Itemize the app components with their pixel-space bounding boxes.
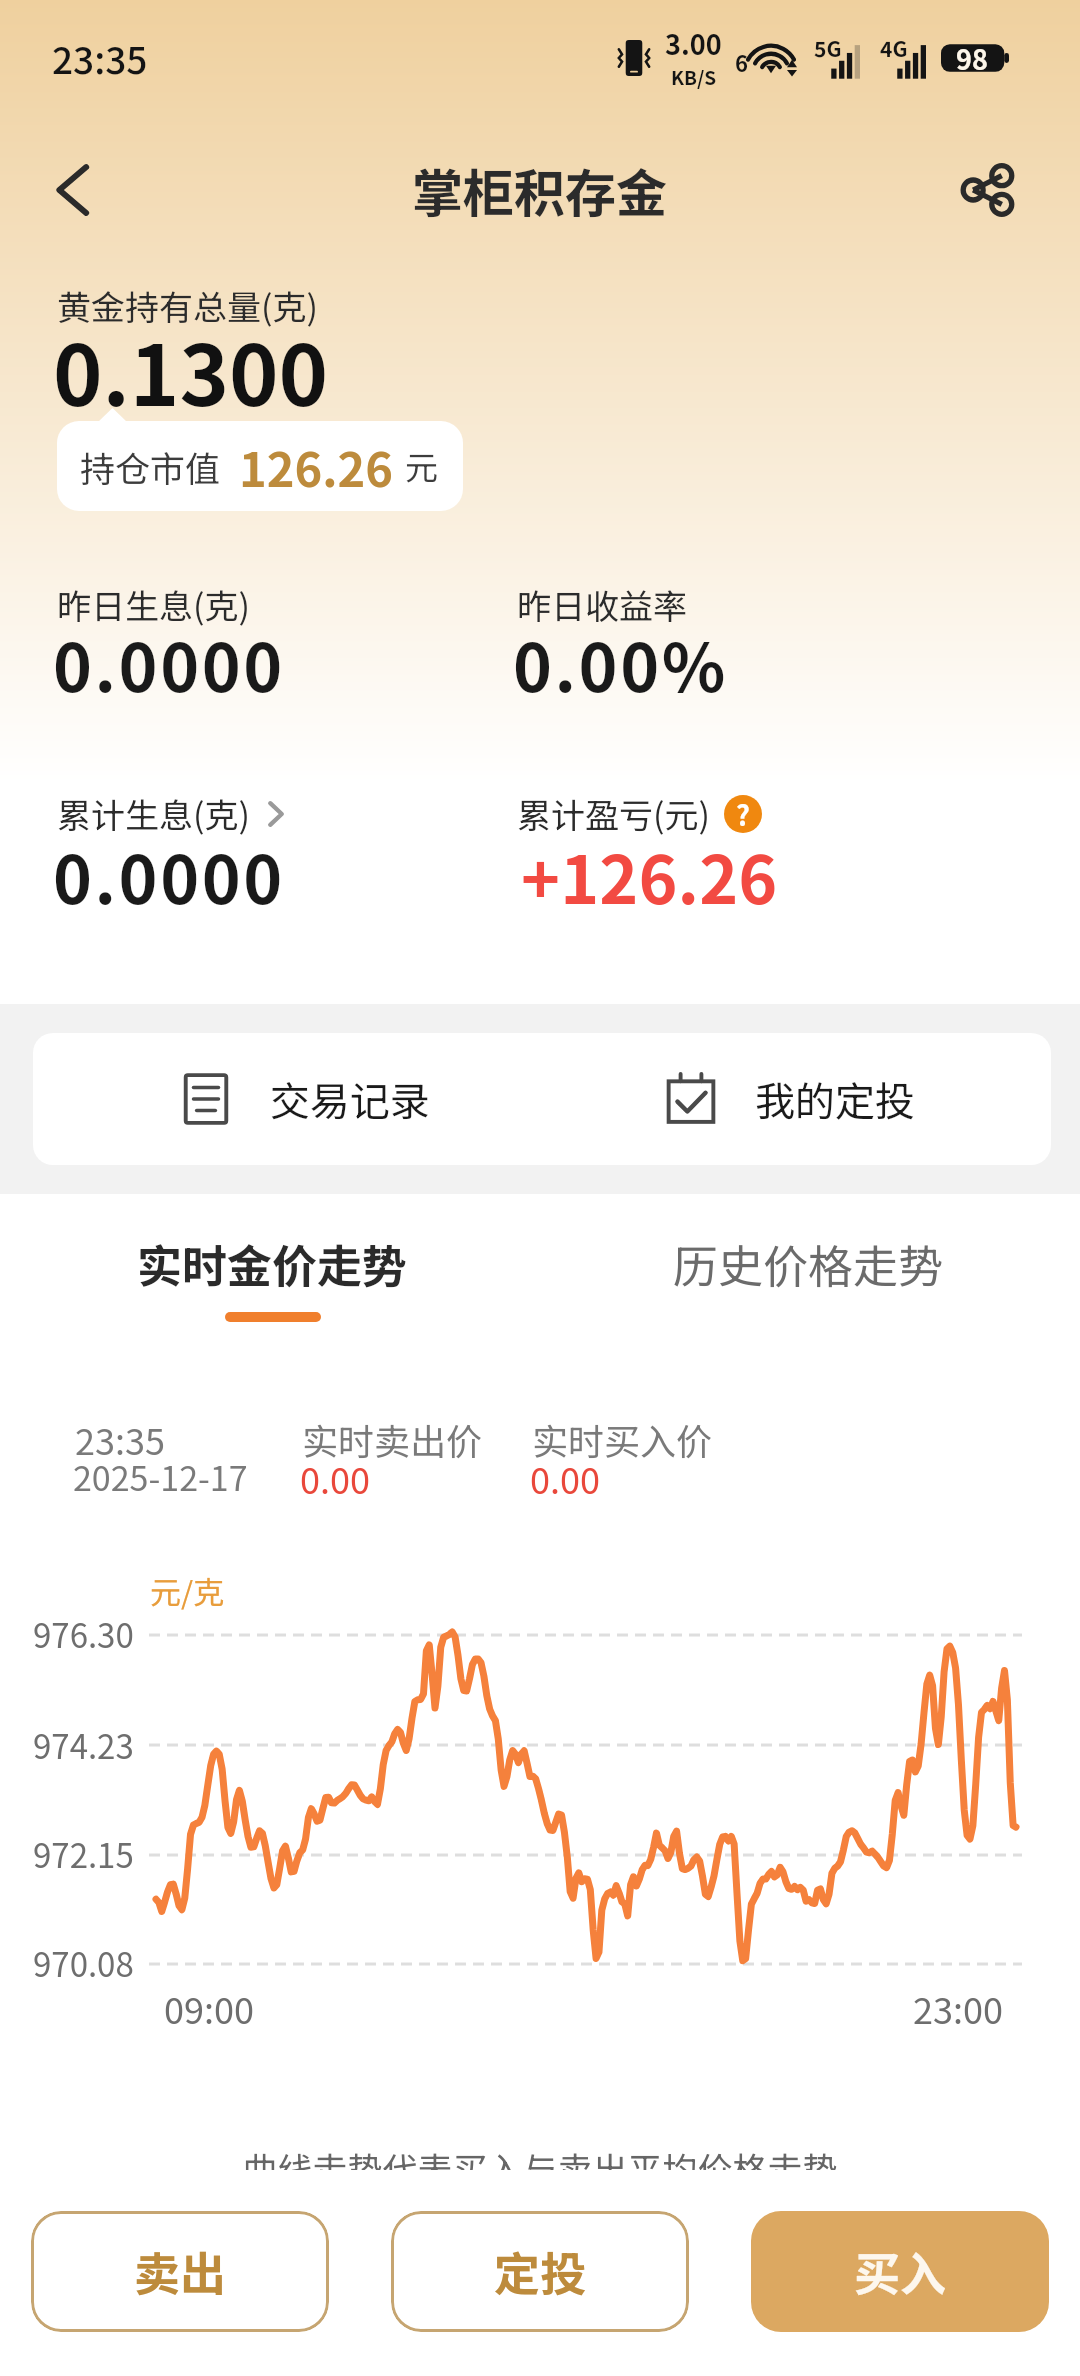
staticText: KB/S xyxy=(671,63,717,91)
staticText: 0.1300 xyxy=(53,309,329,431)
staticText: 曲线走势代表买入与卖出平均价格走势 xyxy=(0,2142,1080,2193)
staticText: 2025-12-17 xyxy=(73,1452,248,1501)
staticText: 23:35 xyxy=(75,1413,165,1465)
staticText: 实时金价走势 xyxy=(137,1231,408,1296)
staticText: 掌柜积存金 xyxy=(412,153,668,227)
button[interactable]: 我的定投 xyxy=(542,1033,1051,1165)
staticText: 976.30 xyxy=(33,1610,134,1658)
button[interactable]: Help xyxy=(724,795,762,833)
staticText: 972.15 xyxy=(33,1830,134,1878)
staticText: 23:00 xyxy=(913,1982,1003,2034)
staticText: 4G xyxy=(880,33,908,63)
staticText: 实时买入价 xyxy=(532,1413,713,1465)
staticText: 974.23 xyxy=(33,1721,134,1769)
staticText: 3.00 xyxy=(665,24,722,63)
button[interactable]: 交易记录 xyxy=(33,1033,542,1165)
staticText: 实时卖出价 xyxy=(302,1413,483,1465)
staticText: 0.0000 xyxy=(53,615,285,711)
button[interactable]: Back xyxy=(39,154,111,226)
staticText: ? xyxy=(736,795,750,833)
staticText: 历史价格走势 xyxy=(673,1231,944,1296)
button[interactable]: 历史价格走势 xyxy=(630,1231,986,1341)
staticText: 126.26 xyxy=(239,432,393,500)
button[interactable]: 买入 xyxy=(751,2211,1049,2332)
staticText: 累计盈亏(元) xyxy=(517,789,710,838)
staticText: 98 xyxy=(956,39,988,78)
staticText: 持仓市值 xyxy=(80,441,221,492)
button[interactable]: 持仓市值 xyxy=(57,421,463,511)
staticText: 昨日收益率 xyxy=(517,580,687,629)
staticText: 元 xyxy=(405,442,438,490)
staticText: 0.00 xyxy=(300,1452,370,1504)
staticText: 昨日生息(克) xyxy=(57,580,250,629)
staticText: 黄金持有总量(克) xyxy=(57,281,318,330)
staticText: 0.00 xyxy=(530,1452,600,1504)
staticText: 交易记录 xyxy=(270,1070,430,1128)
button[interactable]: 定投 xyxy=(391,2211,689,2332)
button[interactable]: 累计生息(克) xyxy=(57,789,294,838)
staticText: 5G xyxy=(814,33,842,63)
staticText: 我的定投 xyxy=(755,1070,915,1128)
staticText: 定投 xyxy=(494,2238,586,2305)
staticText: 元/克 xyxy=(150,1568,225,1613)
staticText: 0.0000 xyxy=(53,827,285,923)
staticText: +126.26 xyxy=(521,827,778,923)
staticText: 6 xyxy=(735,46,748,78)
staticText: 970.08 xyxy=(33,1939,134,1987)
staticText: 0.00% xyxy=(513,615,728,711)
staticText: 卖出 xyxy=(134,2238,226,2305)
button[interactable]: 卖出 xyxy=(31,2211,329,2332)
staticText: 23:35 xyxy=(52,31,148,85)
staticText: 买入 xyxy=(854,2238,946,2305)
button[interactable]: 实时金价走势 xyxy=(96,1231,448,1341)
button[interactable]: Share xyxy=(952,154,1024,226)
staticText: 09:00 xyxy=(164,1982,254,2034)
staticText: 累计生息(克) xyxy=(57,789,250,838)
